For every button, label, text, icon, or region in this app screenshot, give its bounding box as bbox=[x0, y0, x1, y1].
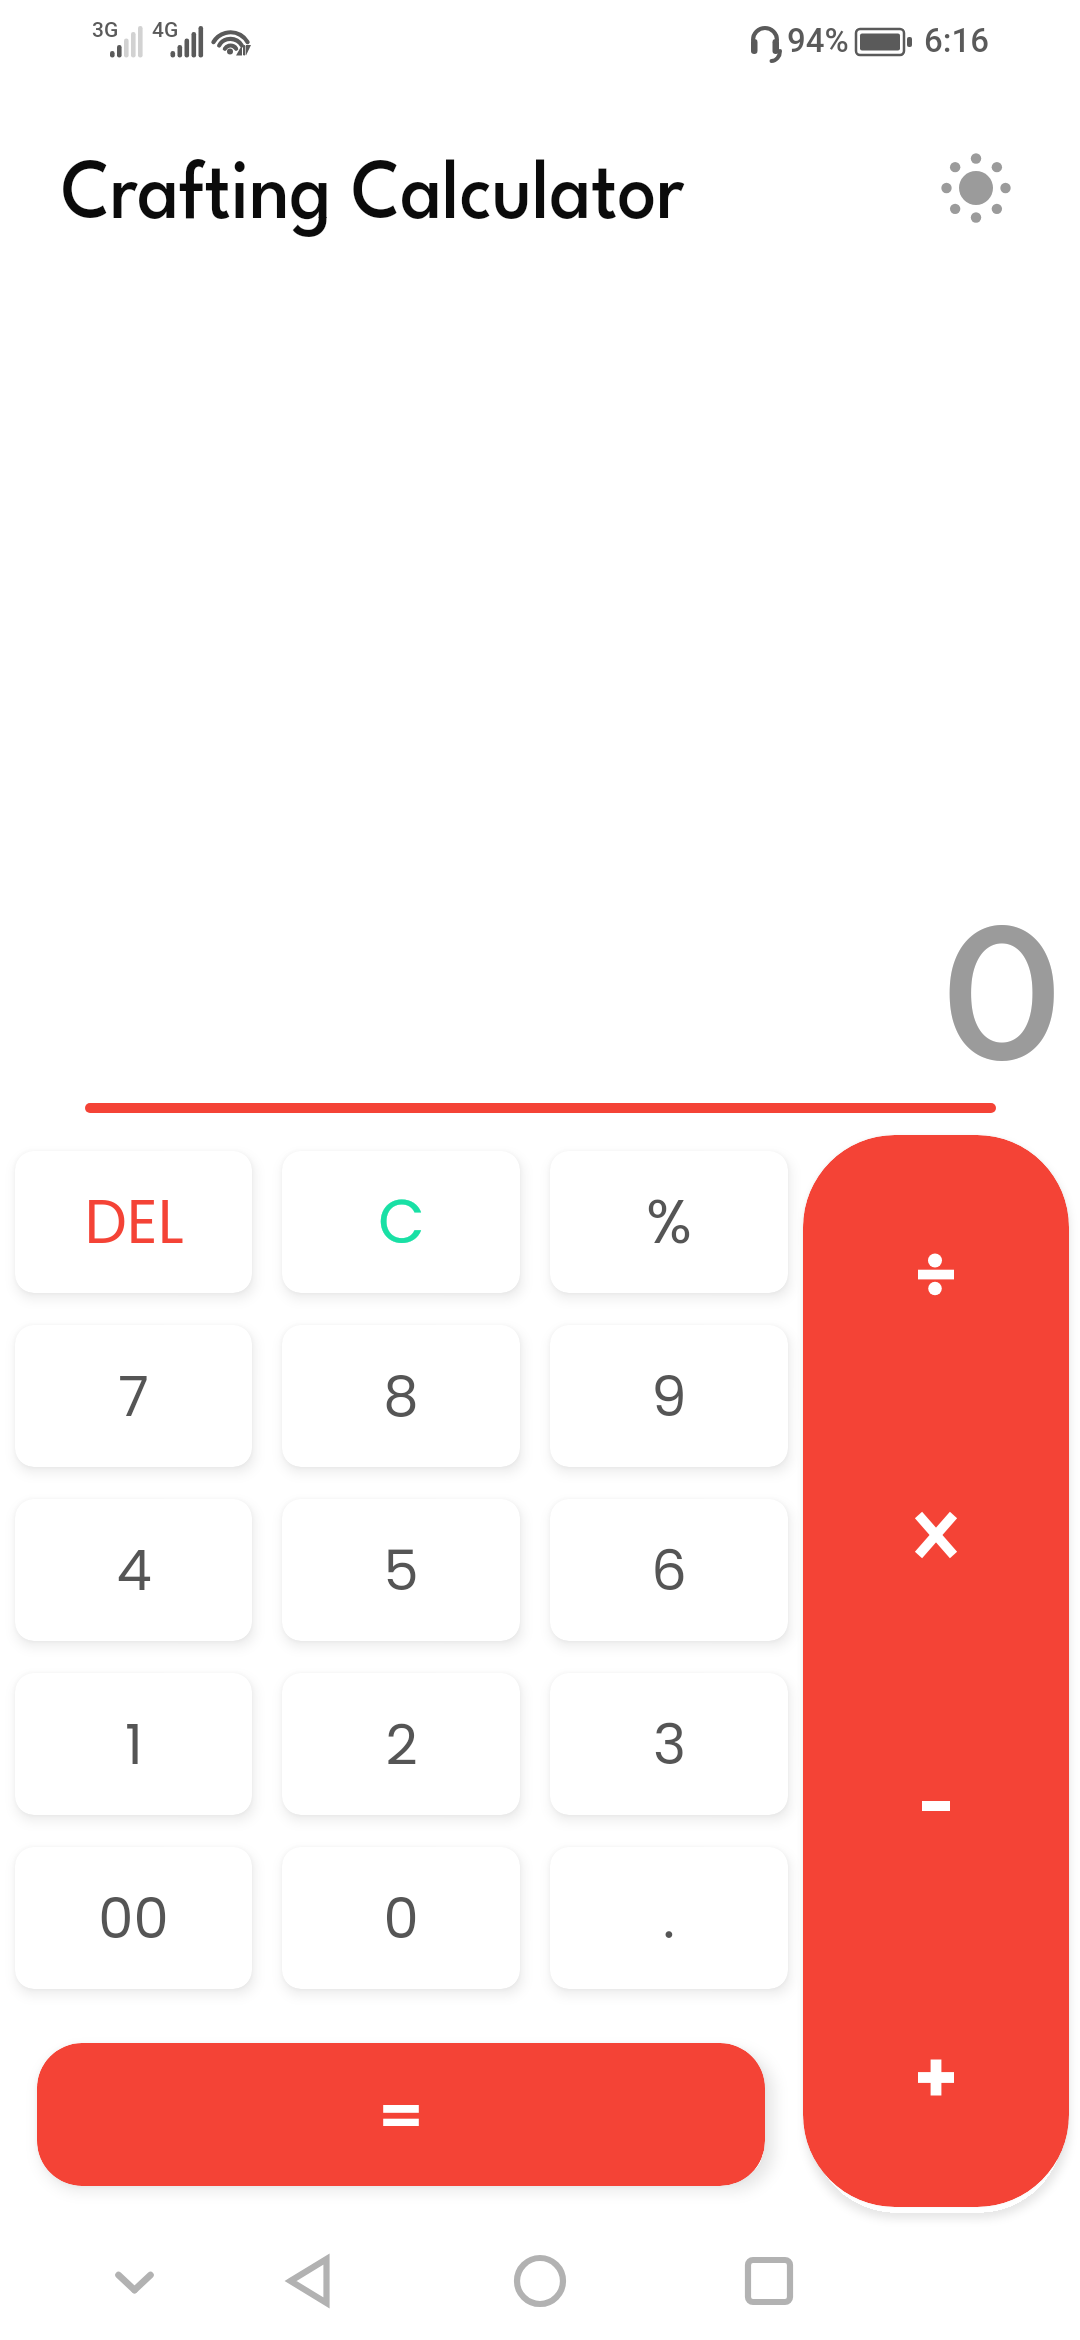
button[interactable] bbox=[37, 2043, 765, 2186]
button[interactable]: 0 bbox=[282, 1847, 520, 1989]
staticText: 3G bbox=[92, 18, 119, 43]
button[interactable]: . bbox=[550, 1847, 788, 1989]
staticText: 6 bbox=[651, 1531, 687, 1609]
staticText: 1 bbox=[125, 1705, 143, 1783]
staticText: 0 bbox=[383, 1879, 419, 1957]
button[interactable]: Back bbox=[247, 2207, 367, 2340]
staticText: 4 bbox=[116, 1531, 152, 1609]
staticText: Crafting Calculator bbox=[61, 159, 685, 236]
button[interactable]: 8 bbox=[282, 1325, 520, 1467]
button[interactable]: C bbox=[282, 1151, 520, 1293]
button[interactable]: Subtract bbox=[803, 1671, 1069, 1939]
button[interactable]: Add bbox=[803, 1939, 1069, 2207]
button[interactable]: 1 bbox=[15, 1673, 252, 1815]
staticText: 8 bbox=[383, 1357, 419, 1435]
staticText: % bbox=[646, 1180, 692, 1264]
button[interactable]: Multiply bbox=[803, 1403, 1069, 1671]
button[interactable]: 3 bbox=[550, 1673, 788, 1815]
staticText: 94% bbox=[787, 21, 849, 60]
button[interactable]: 7 bbox=[15, 1325, 252, 1467]
button[interactable]: Home bbox=[480, 2207, 600, 2340]
button[interactable]: 5 bbox=[282, 1499, 520, 1641]
button[interactable]: Toggle theme bbox=[926, 138, 1026, 238]
button[interactable]: DEL bbox=[15, 1151, 252, 1293]
staticText: 3 bbox=[653, 1705, 686, 1783]
staticText: 6:16 bbox=[924, 21, 990, 60]
staticText: 4G bbox=[152, 18, 179, 43]
button[interactable]: Recent apps bbox=[709, 2207, 829, 2340]
button[interactable]: Hide keyboard bbox=[74, 2207, 194, 2340]
button[interactable]: 4 bbox=[15, 1499, 252, 1641]
staticText: DEL bbox=[84, 1180, 184, 1264]
staticText: 0 bbox=[943, 920, 1064, 1103]
staticText: 2 bbox=[385, 1705, 418, 1783]
button[interactable]: 00 bbox=[15, 1847, 252, 1989]
staticText: 00 bbox=[98, 1879, 169, 1957]
staticText: . bbox=[663, 1879, 675, 1957]
button[interactable]: 2 bbox=[282, 1673, 520, 1815]
button[interactable]: Divide bbox=[803, 1135, 1069, 1403]
button[interactable]: 6 bbox=[550, 1499, 788, 1641]
button[interactable]: 9 bbox=[550, 1325, 788, 1467]
staticText: 5 bbox=[383, 1531, 419, 1609]
button[interactable]: % bbox=[550, 1151, 788, 1293]
staticText: 9 bbox=[651, 1357, 687, 1435]
staticText: C bbox=[378, 1180, 425, 1264]
staticText: 7 bbox=[118, 1357, 149, 1435]
